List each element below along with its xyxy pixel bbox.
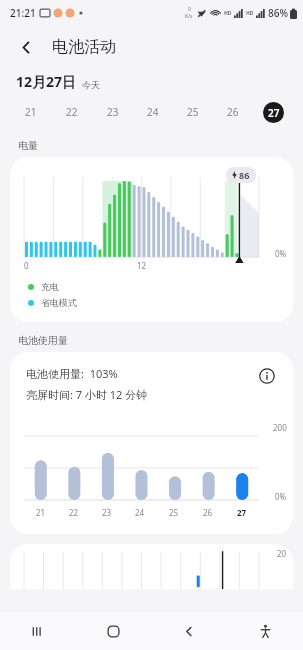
staticText: 电池活动 [52,37,116,57]
staticText: 27 [237,507,247,518]
staticText: 25 [169,507,179,518]
button[interactable]: 最近任务 [0,612,75,650]
button[interactable]: 0 [10,157,293,322]
staticText: 24 [135,507,145,518]
button[interactable]: 电池使用量: 103% [10,352,293,534]
staticText: 0 [188,6,191,13]
staticText: 20 [277,548,287,559]
staticText: 省电模式 [41,297,77,308]
staticText: 26 [227,105,239,119]
staticText: 电池使用量 [18,334,68,347]
staticText: 22 [69,507,79,518]
staticText: 亮屏时间: 7 小时 12 分钟 [26,387,148,402]
button[interactable]: 24 [133,95,173,129]
staticText: 今天 [82,79,100,90]
staticText: 22 [66,105,78,119]
staticText: 86% [268,6,288,20]
staticText: 25 [187,105,199,119]
staticText: 86 [239,169,250,181]
staticText: 23 [107,105,119,119]
button[interactable]: 26 [213,95,253,129]
staticText: 12月27日 [16,72,77,91]
staticText: 21:21 [10,6,36,20]
staticText: 23 [102,507,112,518]
staticText: 27 [268,106,280,120]
staticText: 0% [275,248,287,259]
button[interactable]: 20 [10,544,293,589]
staticText: 12 [137,260,147,271]
staticText: HD [246,10,254,17]
button[interactable]: 返回 [12,33,40,61]
staticText: 26 [203,507,213,518]
button[interactable]: 22 [51,95,92,129]
staticText: 0 [24,260,29,271]
staticText: 200 [273,422,287,433]
button[interactable]: 23 [92,95,133,129]
staticText: 电池使用量: 103% [26,366,118,381]
button[interactable]: 21 [10,95,51,129]
staticText: 24 [147,105,159,119]
staticText: 21 [36,507,46,518]
staticText: 21 [25,105,37,119]
button[interactable]: 信息 [257,366,277,386]
button[interactable]: 27 [253,95,293,129]
button[interactable]: 返回 [151,612,227,650]
staticText: K/s [185,13,193,20]
staticText: 0% [275,491,287,502]
staticText: 充电 [41,281,59,292]
staticText: HD [224,10,232,17]
staticText: 电量 [18,139,38,152]
button[interactable]: 无障碍 [227,612,303,650]
button[interactable]: 主屏幕 [75,612,151,650]
button[interactable]: 25 [173,95,213,129]
